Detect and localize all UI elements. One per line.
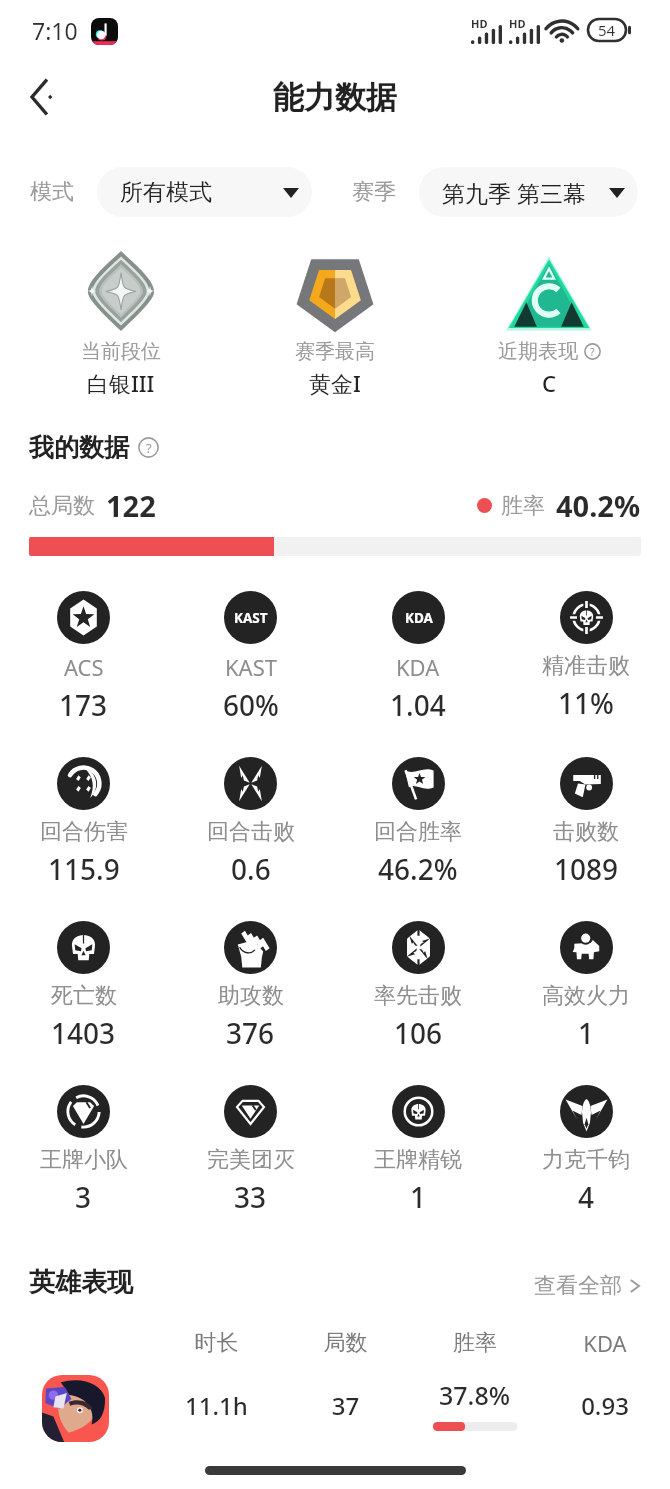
staticText: 1089 — [554, 850, 619, 888]
staticText: 1 — [578, 1014, 595, 1052]
staticText: 死亡数 — [51, 982, 117, 1010]
button[interactable]: 11.1h — [0, 1372, 670, 1444]
button[interactable]: ACS — [0, 591, 167, 724]
staticText: 0.6 — [231, 850, 271, 888]
staticText: C — [542, 368, 556, 398]
button[interactable]: 王牌小队 — [0, 1085, 167, 1216]
staticText: 回合伤害 — [40, 818, 128, 846]
staticText: 模式 — [30, 178, 74, 206]
staticText: 0.93 — [540, 1389, 670, 1422]
staticText: 173 — [59, 686, 108, 724]
button[interactable]: 当前段位 — [14, 248, 228, 398]
staticText: 时长 — [152, 1329, 281, 1357]
staticText: 能力数据 — [273, 78, 397, 117]
button[interactable]: 回合胜率 — [334, 757, 502, 888]
staticText: 局数 — [281, 1329, 410, 1357]
staticText: 助攻数 — [218, 982, 284, 1010]
staticText: KDA — [405, 609, 433, 627]
button[interactable]: 所有模式 — [97, 167, 312, 217]
button[interactable]: 回合击败 — [167, 757, 334, 888]
button[interactable]: 第九季 第三幕 — [419, 167, 638, 217]
staticText: 回合胜率 — [374, 818, 462, 846]
staticText: 率先击败 — [374, 982, 462, 1010]
staticText: 白银III — [87, 368, 155, 398]
button[interactable]: KDA — [334, 591, 502, 724]
staticText: 胜率 — [501, 492, 545, 520]
button[interactable]: 助攻数 — [167, 921, 334, 1052]
button[interactable]: 精准击败 — [502, 591, 670, 722]
staticText: 王牌小队 — [40, 1146, 128, 1174]
staticText: 376 — [226, 1014, 275, 1052]
staticText: 115.9 — [48, 850, 120, 888]
button[interactable]: 高效火力 — [502, 921, 670, 1052]
staticText: ? — [146, 439, 152, 457]
staticText: 王牌精锐 — [374, 1146, 462, 1174]
staticText: 英雄表现 — [29, 1266, 133, 1299]
staticText: 46.2% — [378, 850, 458, 888]
staticText: HD — [509, 16, 526, 31]
staticText: 高效火力 — [542, 982, 630, 1010]
staticText: 第九季 第三幕 — [442, 177, 586, 208]
staticText: 106 — [394, 1014, 443, 1052]
button[interactable]: KAST — [167, 591, 334, 724]
staticText: 力克千钧 — [542, 1146, 630, 1174]
button[interactable]: 击败数 — [502, 757, 670, 888]
staticText: 1403 — [51, 1014, 116, 1052]
staticText: 4 — [578, 1178, 595, 1216]
staticText: 7:10 — [32, 15, 78, 46]
staticText: 回合击败 — [207, 818, 295, 846]
button[interactable]: 王牌精锐 — [334, 1085, 502, 1216]
staticText: 11% — [558, 684, 614, 722]
staticText: 11.1h — [152, 1389, 281, 1422]
button[interactable]: 近期表现 — [442, 248, 656, 398]
staticText: 完美团灭 — [207, 1146, 295, 1174]
button[interactable]: 死亡数 — [0, 921, 167, 1052]
staticText: 1 — [410, 1178, 427, 1216]
button[interactable]: 我的数据 — [29, 432, 159, 463]
staticText: 胜率 — [410, 1329, 540, 1357]
staticText: 查看全部 — [534, 1272, 622, 1300]
staticText: 近期表现 — [498, 339, 578, 364]
staticText: 所有模式 — [120, 178, 212, 207]
staticText: ? — [590, 345, 595, 359]
staticText: KDA — [396, 652, 440, 682]
staticText: 赛季最高 — [295, 339, 375, 364]
staticText: 精准击败 — [542, 652, 630, 680]
staticText: 总局数 — [29, 492, 95, 520]
staticText: 我的数据 — [29, 432, 129, 463]
staticText: 37.8% — [439, 1378, 511, 1412]
staticText: KAST — [225, 652, 277, 682]
staticText: HD — [471, 16, 488, 31]
staticText: 40.2% — [556, 486, 641, 525]
staticText: 击败数 — [553, 818, 619, 846]
button[interactable]: 力克千钧 — [502, 1085, 670, 1216]
staticText: 赛季 — [352, 178, 396, 206]
staticText: 黄金I — [309, 368, 361, 398]
staticText: KDA — [540, 1328, 670, 1358]
staticText: 60% — [223, 686, 279, 724]
button[interactable]: 查看全部 — [534, 1272, 642, 1300]
button[interactable]: 赛季最高 — [228, 248, 442, 398]
button[interactable]: 完美团灭 — [167, 1085, 334, 1216]
staticText: 54 — [598, 20, 616, 40]
staticText: 37 — [281, 1389, 410, 1422]
button[interactable]: Back — [14, 70, 68, 124]
staticText: 33 — [234, 1178, 267, 1216]
staticText: KAST — [234, 609, 268, 627]
staticText: 1.04 — [390, 686, 446, 724]
staticText: 当前段位 — [81, 339, 161, 364]
button[interactable]: 率先击败 — [334, 921, 502, 1052]
button[interactable]: 回合伤害 — [0, 757, 167, 888]
staticText: 122 — [106, 486, 156, 525]
staticText: 3 — [75, 1178, 92, 1216]
staticText: ACS — [64, 652, 104, 682]
